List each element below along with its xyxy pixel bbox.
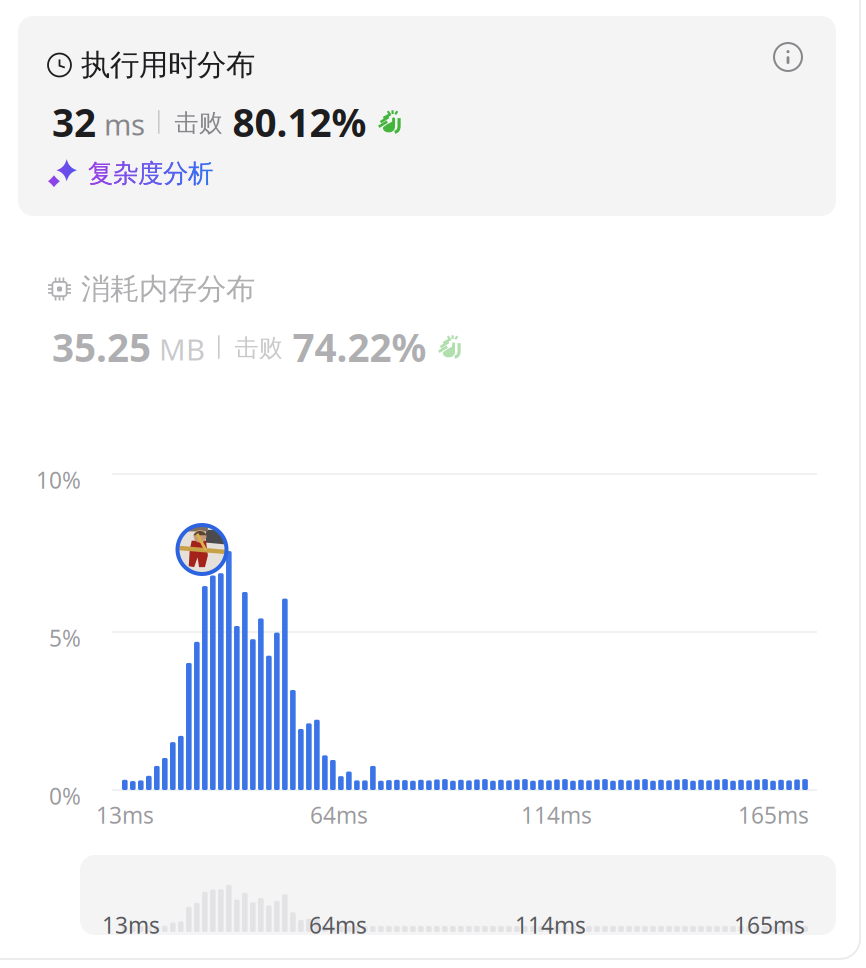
staticText: 114ms bbox=[521, 800, 592, 830]
staticText: 5% bbox=[49, 623, 81, 653]
staticText: 执行用时分布 bbox=[81, 47, 255, 83]
staticText: 击败 bbox=[175, 108, 223, 138]
staticText: 64ms bbox=[310, 800, 368, 830]
staticText: 13ms bbox=[102, 910, 160, 940]
staticText: 0% bbox=[49, 781, 81, 811]
staticText: 10% bbox=[36, 465, 81, 495]
staticText: 64ms bbox=[309, 910, 367, 940]
staticText: 165ms bbox=[734, 910, 805, 940]
staticText: MB bbox=[159, 329, 205, 368]
button[interactable]: 时间范围选择 bbox=[80, 855, 836, 935]
staticText: ms bbox=[104, 104, 145, 143]
staticText: 消耗内存分布 bbox=[81, 271, 255, 307]
staticText: 74.22% bbox=[293, 321, 427, 373]
staticText: 13ms bbox=[96, 800, 154, 830]
staticText: 114ms bbox=[515, 910, 586, 940]
staticText: 80.12% bbox=[233, 96, 367, 148]
staticText: 35.25 bbox=[52, 321, 151, 373]
staticText: 32 bbox=[52, 96, 96, 148]
staticText: 165ms bbox=[738, 800, 809, 830]
staticText: 击败 bbox=[235, 333, 283, 363]
button[interactable]: 复杂度分析 bbox=[44, 154, 217, 193]
staticText: 复杂度分析 bbox=[88, 158, 213, 189]
button[interactable]: 说明 bbox=[766, 35, 810, 79]
